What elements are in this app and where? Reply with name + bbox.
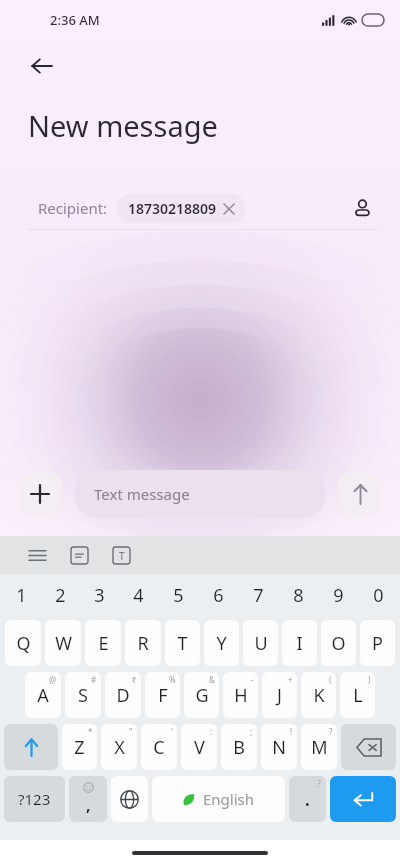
button[interactable]: ?123 — [4, 776, 65, 822]
button[interactable]: Clipboard — [62, 538, 96, 572]
staticText: 1 — [16, 583, 27, 608]
button[interactable]: 3 — [80, 574, 119, 617]
staticText: B — [233, 735, 245, 760]
staticText: V — [194, 735, 205, 760]
staticText: : — [210, 726, 213, 737]
button[interactable]: N — [261, 724, 297, 770]
staticText: 0 — [373, 583, 384, 608]
button[interactable]: L — [340, 672, 375, 718]
button[interactable]: H — [223, 672, 258, 718]
staticText: ( — [329, 674, 332, 685]
button[interactable]: Z — [62, 724, 97, 770]
staticText: E — [98, 631, 109, 656]
staticText: ₹ — [132, 674, 137, 685]
button[interactable]: . — [289, 776, 326, 822]
button[interactable]: M — [301, 724, 337, 770]
button[interactable]: I — [282, 620, 317, 666]
staticText: 2:36 AM — [50, 11, 100, 29]
staticText: Recipient: — [38, 198, 108, 218]
button[interactable]: Shift — [4, 724, 58, 770]
button[interactable]: Enter — [330, 776, 396, 822]
button[interactable]: 5 — [158, 574, 198, 617]
staticText: H — [234, 683, 248, 708]
button[interactable]: B — [221, 724, 257, 770]
button[interactable]: Emoji and comma — [69, 776, 107, 822]
button[interactable]: Text settings — [104, 538, 138, 572]
button[interactable]: T — [165, 620, 200, 666]
button[interactable]: R — [125, 620, 161, 666]
staticText: 2 — [55, 583, 66, 608]
button[interactable]: 9 — [318, 574, 358, 617]
button[interactable]: Y — [204, 620, 239, 666]
staticText: New message — [28, 106, 218, 145]
staticText: - — [251, 674, 254, 685]
button[interactable]: S — [65, 672, 101, 718]
staticText: G — [195, 683, 209, 708]
button[interactable]: Text message — [74, 470, 326, 518]
button[interactable]: O — [321, 620, 356, 666]
button[interactable]: Backspace — [341, 724, 396, 770]
staticText: English — [203, 789, 255, 809]
button[interactable]: K — [301, 672, 336, 718]
staticText: % — [169, 674, 176, 685]
staticText: ? — [329, 726, 333, 737]
button[interactable]: J — [262, 672, 297, 718]
button[interactable]: Send — [338, 472, 382, 516]
staticText: 6 — [213, 583, 224, 608]
button[interactable]: V — [181, 724, 217, 770]
staticText: " — [129, 726, 133, 737]
button[interactable]: Back — [20, 44, 64, 88]
staticText: Y — [216, 631, 227, 656]
button[interactable]: Add attachment — [18, 472, 62, 516]
button[interactable]: Space — [152, 776, 285, 822]
button[interactable]: D — [105, 672, 141, 718]
button[interactable]: C — [141, 724, 177, 770]
button[interactable]: F — [145, 672, 180, 718]
button[interactable]: 18730218809 — [117, 194, 245, 223]
staticText: I — [296, 631, 303, 656]
staticText: N — [272, 735, 286, 760]
staticText: 9 — [333, 583, 344, 608]
button[interactable]: 2 — [41, 574, 80, 617]
staticText: 18730218809 — [128, 199, 217, 218]
button[interactable]: 6 — [198, 574, 238, 617]
staticText: # — [91, 674, 97, 685]
staticText: F — [158, 683, 168, 708]
staticText: 3 — [94, 583, 105, 608]
button[interactable]: Keyboard menu — [20, 538, 54, 572]
button[interactable]: Change language — [111, 776, 148, 822]
button[interactable]: 0 — [358, 574, 398, 617]
button[interactable]: 4 — [119, 574, 158, 617]
staticText: S — [78, 683, 88, 708]
button[interactable]: G — [184, 672, 219, 718]
staticText: R — [137, 631, 149, 656]
button[interactable]: Choose contact — [342, 188, 382, 228]
button[interactable]: Q — [5, 620, 41, 666]
staticText: 7 — [253, 583, 264, 608]
staticText: * — [88, 726, 93, 737]
staticText: 4 — [133, 583, 144, 608]
staticText: A — [37, 683, 49, 708]
staticText: .? — [315, 778, 321, 789]
staticText: @ — [49, 674, 57, 685]
staticText: J — [277, 683, 282, 708]
staticText: Z — [74, 735, 85, 760]
button[interactable]: 7 — [238, 574, 278, 617]
staticText: + — [288, 674, 293, 685]
staticText: 5 — [173, 583, 184, 608]
button[interactable]: 1 — [2, 574, 41, 617]
button[interactable]: 8 — [278, 574, 318, 617]
button[interactable]: X — [101, 724, 137, 770]
staticText: L — [353, 683, 363, 708]
staticText: P — [372, 631, 383, 656]
button[interactable]: W — [45, 620, 81, 666]
staticText: O — [331, 631, 346, 656]
staticText: C — [153, 735, 165, 760]
button[interactable]: A — [25, 672, 61, 718]
staticText: W — [55, 631, 72, 656]
button[interactable]: P — [360, 620, 395, 666]
button[interactable]: E — [85, 620, 121, 666]
staticText: K — [313, 683, 325, 708]
button[interactable]: U — [243, 620, 278, 666]
staticText: Text message — [94, 484, 190, 504]
